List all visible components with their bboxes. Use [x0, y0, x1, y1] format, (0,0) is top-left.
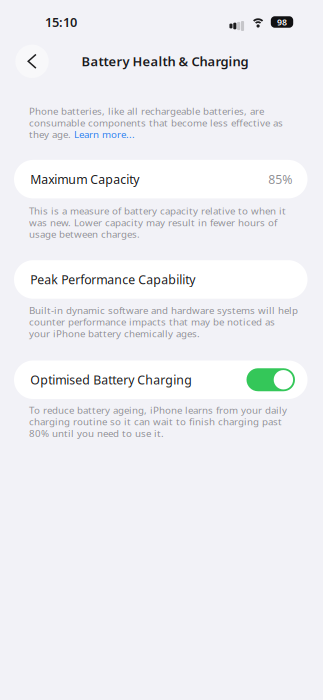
staticText: consumable components that become less e… [29, 116, 283, 129]
staticText: 80% until you need to use it. [29, 426, 164, 440]
staticText: 15:10 [45, 13, 77, 31]
staticText: charging routine so it can wait to finis… [29, 415, 282, 428]
staticText: Phone batteries, like all rechargeable b… [29, 104, 264, 118]
staticText: Maximum Capacity [30, 171, 139, 187]
staticText: usage between charges. [29, 227, 140, 241]
staticText: Optimised Battery Charging [30, 371, 192, 388]
staticText: Learn more... [74, 128, 135, 141]
button[interactable]: Back [15, 45, 49, 78]
staticText: was new. Lower capacity may result in fe… [29, 216, 277, 229]
staticText: Built-in dynamic software and hardware s… [29, 304, 298, 317]
button[interactable]: Maximum Capacity [0, 160, 323, 198]
staticText: 85% [268, 171, 292, 187]
staticText: they age. [29, 128, 74, 141]
button[interactable]: Peak Performance Capability [0, 260, 323, 299]
staticText: Battery Health & Charging [81, 52, 248, 70]
staticText: To reduce battery ageing, iPhone learns … [29, 403, 287, 417]
staticText: your iPhone battery chemically ages. [29, 327, 200, 340]
button[interactable]: Optimised Battery Charging [0, 360, 323, 399]
staticText: counter performance impacts that may be … [29, 315, 275, 328]
staticText: 98 [277, 16, 287, 28]
button[interactable]: Learn more... [74, 128, 135, 141]
staticText: This is a measure of battery capacity re… [29, 204, 286, 217]
staticText: Peak Performance Capability [30, 271, 195, 288]
